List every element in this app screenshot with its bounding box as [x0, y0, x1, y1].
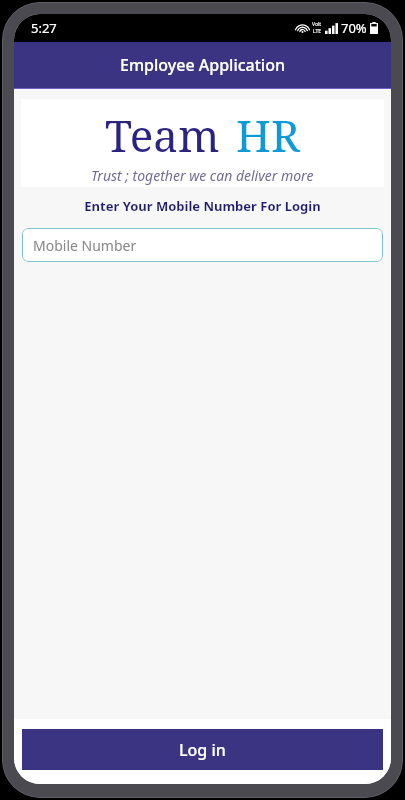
- staticText: 70%: [341, 19, 367, 37]
- button[interactable]: Log in: [22, 729, 383, 770]
- staticText: Mobile Number: [33, 236, 137, 255]
- staticText: Volt: [312, 21, 322, 28]
- staticText: Trust ; together we can deliver more: [91, 166, 314, 185]
- staticText: Employee Application: [120, 54, 285, 76]
- button[interactable]: Mobile Number: [22, 228, 383, 262]
- staticText: HR: [236, 105, 300, 165]
- staticText: Enter Your Mobile Number For Login: [14, 197, 391, 215]
- staticText: Team: [105, 105, 220, 165]
- staticText: LTE: [313, 28, 322, 35]
- staticText: Log in: [179, 739, 226, 761]
- staticText: 5:27: [31, 19, 57, 37]
